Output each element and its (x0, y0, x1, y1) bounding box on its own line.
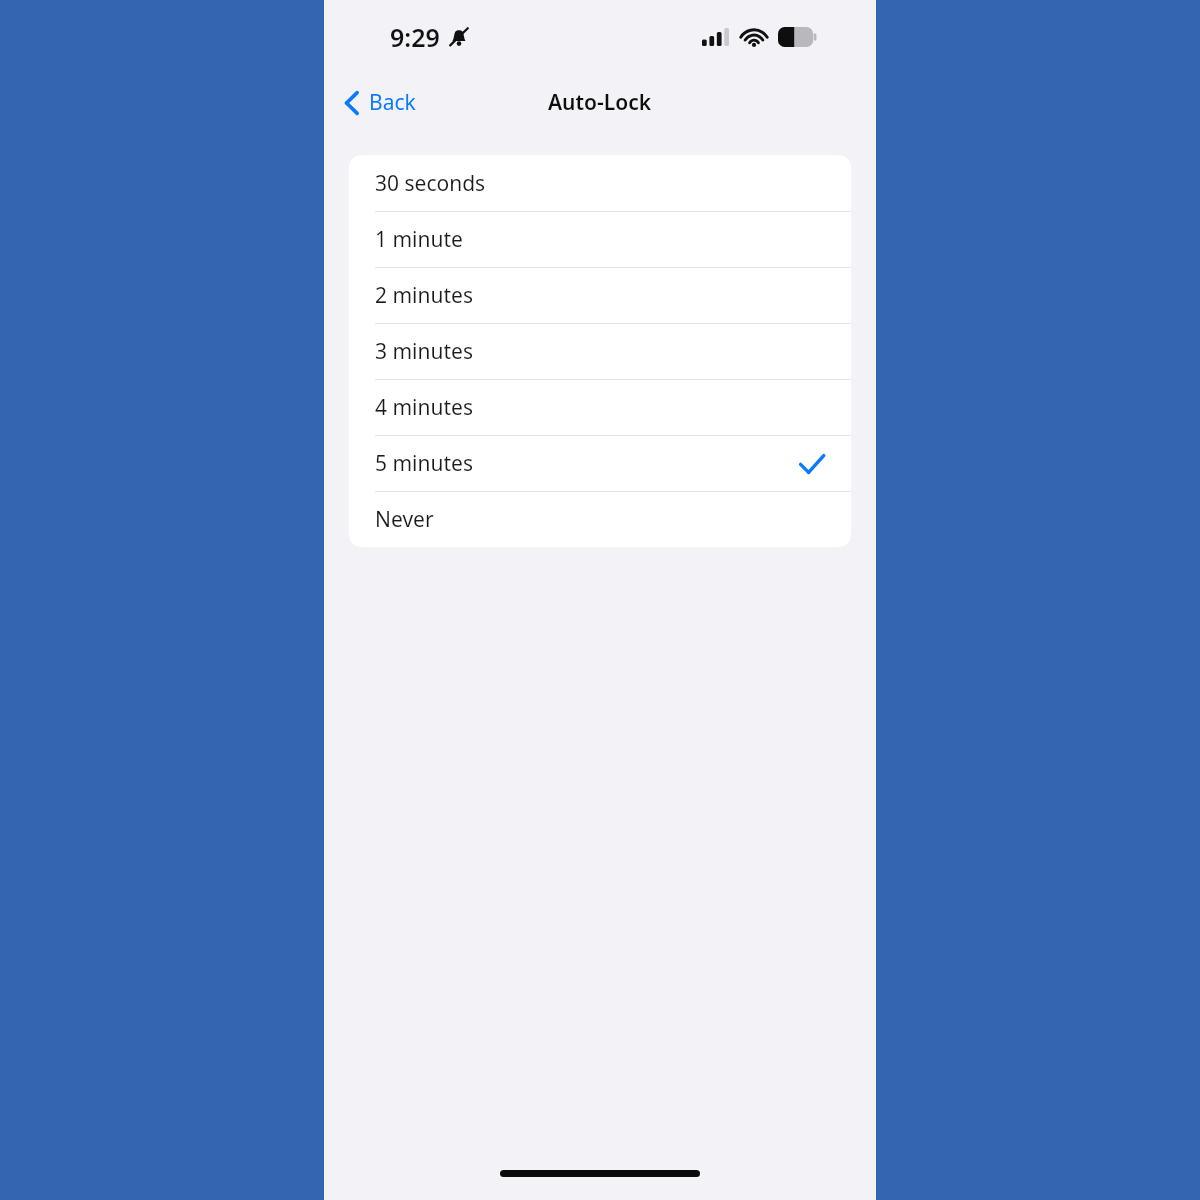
button[interactable]: 30 seconds (349, 155, 851, 211)
staticText: 30 seconds (375, 169, 825, 198)
staticText: Back (369, 88, 416, 117)
button[interactable]: Back (338, 82, 422, 123)
staticText: 3 minutes (375, 337, 825, 366)
button[interactable]: 1 minute (349, 212, 851, 267)
button[interactable]: 4 minutes (349, 380, 851, 435)
button[interactable]: Never (349, 492, 851, 547)
staticText: Auto-Lock (548, 88, 652, 117)
staticText: 4 minutes (375, 393, 825, 422)
other: Selected (799, 454, 825, 474)
staticText: 5 minutes (375, 449, 799, 478)
staticText: 2 minutes (375, 281, 825, 310)
button[interactable]: 2 minutes (349, 268, 851, 323)
button[interactable]: 5 minutes (349, 436, 851, 491)
staticText: 1 minute (375, 225, 825, 254)
staticText: Never (375, 505, 825, 534)
button[interactable]: 3 minutes (349, 324, 851, 379)
staticText: 9:29 (390, 20, 440, 54)
